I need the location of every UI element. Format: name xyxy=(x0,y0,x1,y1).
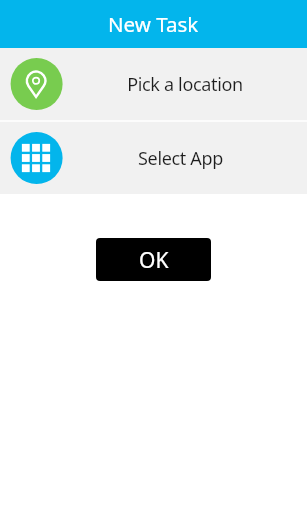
staticText: New Task xyxy=(108,10,199,38)
button[interactable]: Pick a location xyxy=(0,48,307,120)
button[interactable]: OK xyxy=(96,238,211,281)
staticText: Pick a location xyxy=(127,72,243,97)
staticText: OK xyxy=(139,246,169,275)
button[interactable]: Select App xyxy=(0,122,307,194)
other: Select App xyxy=(0,122,64,194)
staticText: Select App xyxy=(138,146,223,171)
other: Pick a location xyxy=(0,48,64,120)
